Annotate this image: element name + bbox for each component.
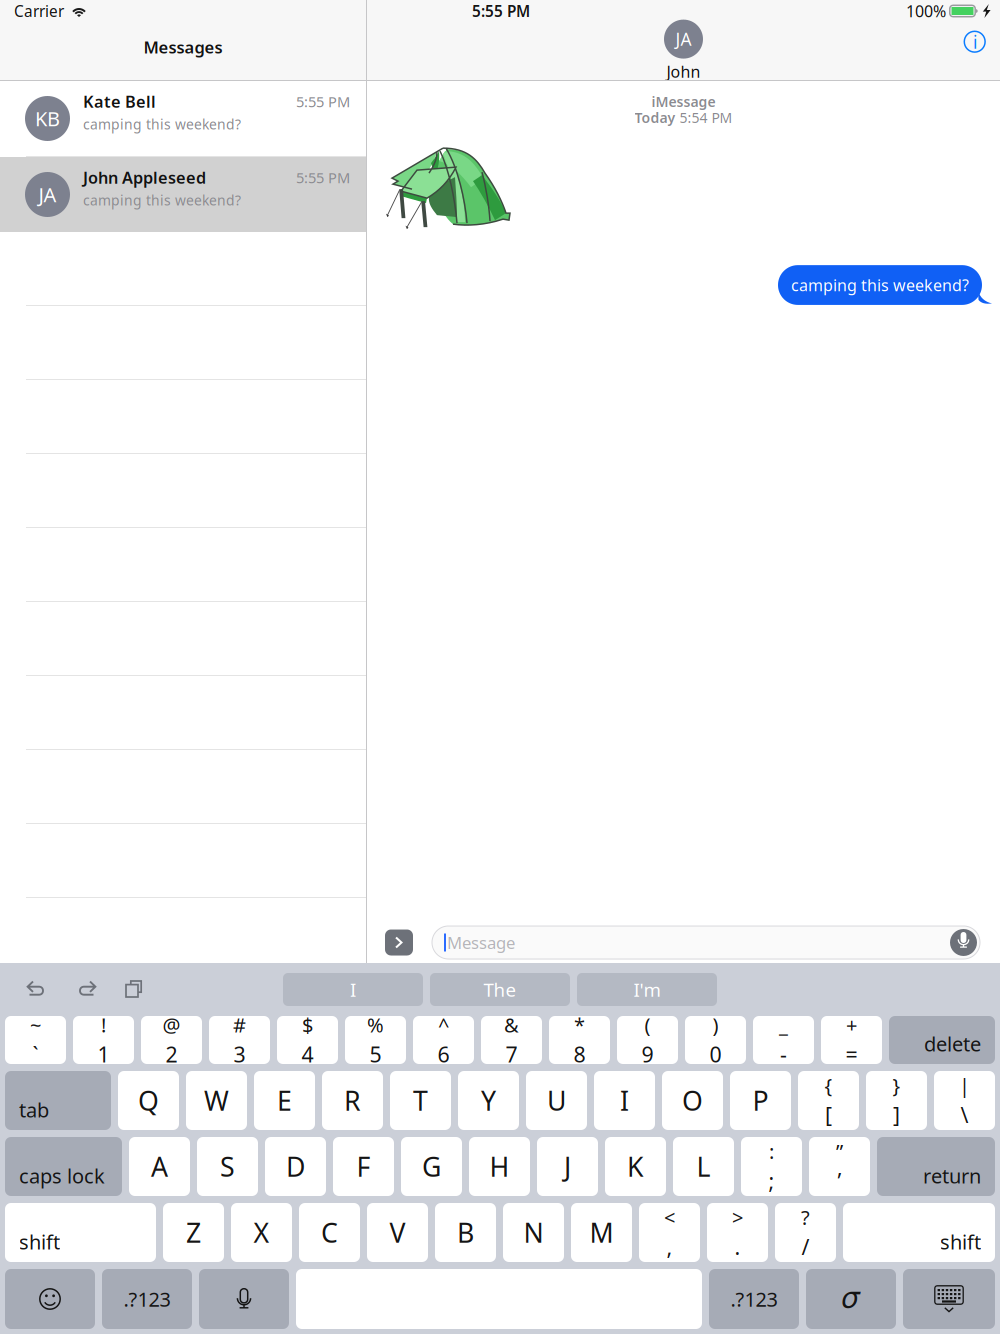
- button[interactable]: P: [730, 1071, 791, 1130]
- button[interactable]: |: [934, 1071, 995, 1130]
- button[interactable]: Q: [118, 1071, 179, 1130]
- button[interactable]: *: [549, 1016, 610, 1064]
- button[interactable]: J: [537, 1137, 598, 1196]
- staticText: Z: [186, 1215, 201, 1250]
- staticText: 2: [165, 1040, 177, 1068]
- button[interactable]: Details: [958, 25, 992, 59]
- staticText: ’: [837, 1167, 841, 1195]
- button[interactable]: .?123: [709, 1269, 799, 1329]
- button[interactable]: L: [673, 1137, 734, 1196]
- button[interactable]: (: [617, 1016, 678, 1064]
- button[interactable]: H: [469, 1137, 530, 1196]
- button[interactable]: App Store: [385, 929, 413, 955]
- button[interactable]: U: [526, 1071, 587, 1130]
- button[interactable]: }: [866, 1071, 927, 1130]
- button[interactable]: T: [390, 1071, 451, 1130]
- button[interactable]: Redo: [76, 981, 96, 997]
- staticText: ): [712, 1012, 718, 1038]
- button[interactable]: F: [333, 1137, 394, 1196]
- staticText: 𝜎: [842, 1285, 860, 1313]
- staticText: S: [220, 1149, 235, 1184]
- button[interactable]: ”: [809, 1137, 870, 1196]
- button[interactable]: +: [821, 1016, 882, 1064]
- button[interactable]: X: [231, 1203, 292, 1262]
- button[interactable]: A: [129, 1137, 190, 1196]
- button[interactable]: <: [639, 1203, 700, 1262]
- button[interactable]: ^: [413, 1016, 474, 1064]
- staticText: caps lock: [19, 1162, 105, 1189]
- button[interactable]: O: [662, 1071, 723, 1130]
- button[interactable]: Key: [903, 1269, 995, 1329]
- staticText: A: [151, 1149, 168, 1184]
- button[interactable]: M: [571, 1203, 632, 1262]
- button[interactable]: @: [141, 1016, 202, 1064]
- button[interactable]: !: [73, 1016, 134, 1064]
- button[interactable]: tab: [5, 1071, 111, 1130]
- button[interactable]: I'm: [577, 973, 717, 1006]
- staticText: Y: [481, 1083, 496, 1118]
- button[interactable]: shift: [5, 1203, 156, 1262]
- button[interactable]: &: [481, 1016, 542, 1064]
- staticText: iMessage: [651, 92, 715, 111]
- button[interactable]: >: [707, 1203, 768, 1262]
- button[interactable]: S: [197, 1137, 258, 1196]
- staticText: camping this weekend?: [83, 115, 241, 133]
- staticText: I'm: [633, 977, 660, 1002]
- button[interactable]: G: [401, 1137, 462, 1196]
- button[interactable]: E: [254, 1071, 315, 1130]
- button[interactable]: %: [345, 1016, 406, 1064]
- button[interactable]: I: [594, 1071, 655, 1130]
- staticText: JA: [675, 28, 691, 51]
- button[interactable]: caps lock: [5, 1137, 122, 1196]
- staticText: ^: [438, 1012, 449, 1038]
- staticText: .?123: [123, 1286, 170, 1312]
- button[interactable]: _: [753, 1016, 814, 1064]
- button[interactable]: Y: [458, 1071, 519, 1130]
- staticText: O: [682, 1083, 703, 1118]
- button[interactable]: R: [322, 1071, 383, 1130]
- button[interactable]: V: [367, 1203, 428, 1262]
- button[interactable]: C: [299, 1203, 360, 1262]
- button[interactable]: Z: [163, 1203, 224, 1262]
- button[interactable]: Paste: [125, 980, 143, 999]
- button[interactable]: #: [209, 1016, 270, 1064]
- button[interactable]: delete: [889, 1016, 995, 1064]
- staticText: Carrier: [14, 1, 64, 21]
- button[interactable]: I: [283, 973, 423, 1006]
- staticText: #: [233, 1012, 246, 1038]
- button[interactable]: ): [685, 1016, 746, 1064]
- staticText: =: [845, 1040, 857, 1068]
- staticText: @: [162, 1012, 180, 1038]
- button[interactable]: K: [605, 1137, 666, 1196]
- button[interactable]: :: [741, 1137, 802, 1196]
- button[interactable]: $: [277, 1016, 338, 1064]
- staticText: [: [825, 1101, 832, 1129]
- button[interactable]: B: [435, 1203, 496, 1262]
- button[interactable]: N: [503, 1203, 564, 1262]
- staticText: |: [959, 1072, 970, 1099]
- button[interactable]: return: [877, 1137, 995, 1196]
- button[interactable]: 𝜎: [806, 1269, 896, 1329]
- staticText: {: [824, 1072, 832, 1099]
- button[interactable]: Key: [199, 1269, 289, 1329]
- button[interactable]: KB: [0, 81, 366, 156]
- button[interactable]: {: [798, 1071, 859, 1130]
- button[interactable]: JA: [0, 157, 366, 232]
- staticText: V: [389, 1215, 405, 1250]
- staticText: ?: [801, 1204, 810, 1231]
- button[interactable]: Key: [5, 1269, 95, 1329]
- button[interactable]: D: [265, 1137, 326, 1196]
- button[interactable]: Undo: [27, 981, 47, 997]
- button[interactable]: The: [430, 973, 570, 1006]
- staticText: T: [413, 1083, 428, 1118]
- button[interactable]: .?123: [102, 1269, 192, 1329]
- staticText: E: [277, 1083, 292, 1118]
- button[interactable]: ~: [5, 1016, 66, 1064]
- button[interactable]: ?: [775, 1203, 836, 1262]
- button[interactable]: shift: [843, 1203, 995, 1262]
- staticText: .?123: [730, 1286, 777, 1312]
- staticText: $: [302, 1012, 313, 1038]
- staticText: %: [367, 1012, 384, 1038]
- button[interactable]: W: [186, 1071, 247, 1130]
